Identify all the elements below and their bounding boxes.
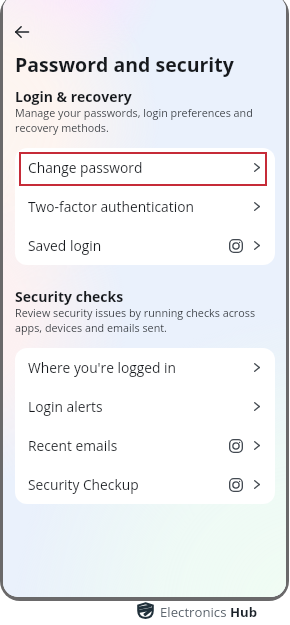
staticText: Change password <box>28 158 254 177</box>
staticText: Login & recovery <box>15 87 132 106</box>
button[interactable]: Login alerts <box>15 387 275 426</box>
staticText: Two-factor authentication <box>28 197 254 216</box>
staticText: Login alerts <box>28 397 254 416</box>
button[interactable]: Recent emails <box>15 426 275 465</box>
staticText: Hub <box>230 603 258 621</box>
button[interactable]: Security Checkup <box>15 465 275 504</box>
button[interactable]: Saved login <box>15 226 275 265</box>
button[interactable]: Two-factor authentication <box>15 187 275 226</box>
staticText: Recent emails <box>28 436 229 455</box>
staticText: Where you're logged in <box>28 358 254 377</box>
staticText: Manage your passwords, login preferences… <box>15 105 255 135</box>
staticText: Saved login <box>28 236 229 255</box>
button[interactable]: Change password <box>15 148 275 187</box>
staticText: Electronics <box>160 603 230 621</box>
button[interactable]: Back <box>9 19 35 45</box>
staticText: Review security issues by running checks… <box>15 305 273 335</box>
staticText: Password and security <box>15 51 234 78</box>
button[interactable]: Where you're logged in <box>15 348 275 387</box>
staticText: Security checks <box>15 287 124 306</box>
staticText: Security Checkup <box>28 475 229 494</box>
